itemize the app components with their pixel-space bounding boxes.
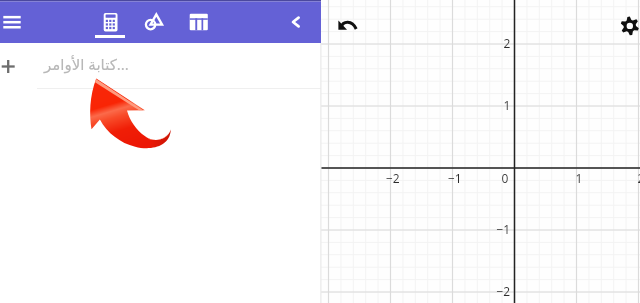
staticText: كتابة الأوامر...: [44, 54, 129, 74]
button[interactable]: Calculator: [90, 2, 130, 43]
button[interactable]: Menu: [0, 2, 34, 43]
button[interactable]: كتابة الأوامر...: [0, 43, 321, 88]
button[interactable]: Table: [178, 2, 218, 43]
button[interactable]: Geometry: [131, 2, 171, 43]
button[interactable]: Collapse panel: [281, 2, 311, 43]
button[interactable]: Undo: [328, 9, 358, 39]
button[interactable]: Settings: [609, 10, 639, 40]
